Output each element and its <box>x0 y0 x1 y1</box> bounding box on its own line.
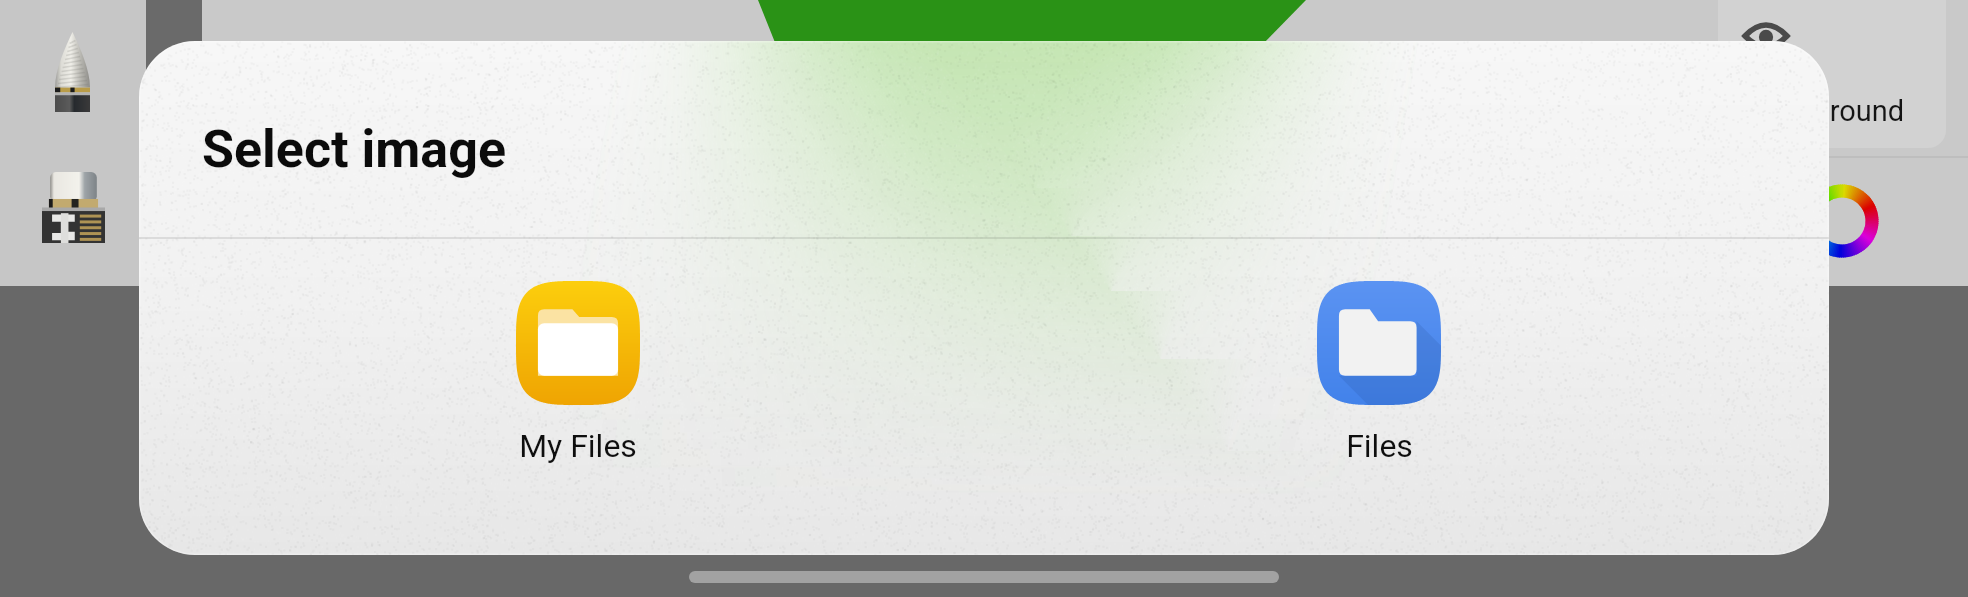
button[interactable]: My Files <box>448 257 708 481</box>
staticText: Select image <box>202 119 506 180</box>
button[interactable]: Files <box>1249 257 1509 481</box>
staticText: Files <box>1346 427 1413 465</box>
staticText: Background <box>1750 94 1905 128</box>
staticText: My Files <box>519 427 637 465</box>
